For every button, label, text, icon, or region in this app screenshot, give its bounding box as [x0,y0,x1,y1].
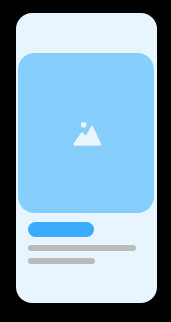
button[interactable]: Primary action [28,222,94,237]
button[interactable]: Image placeholder [18,53,154,213]
